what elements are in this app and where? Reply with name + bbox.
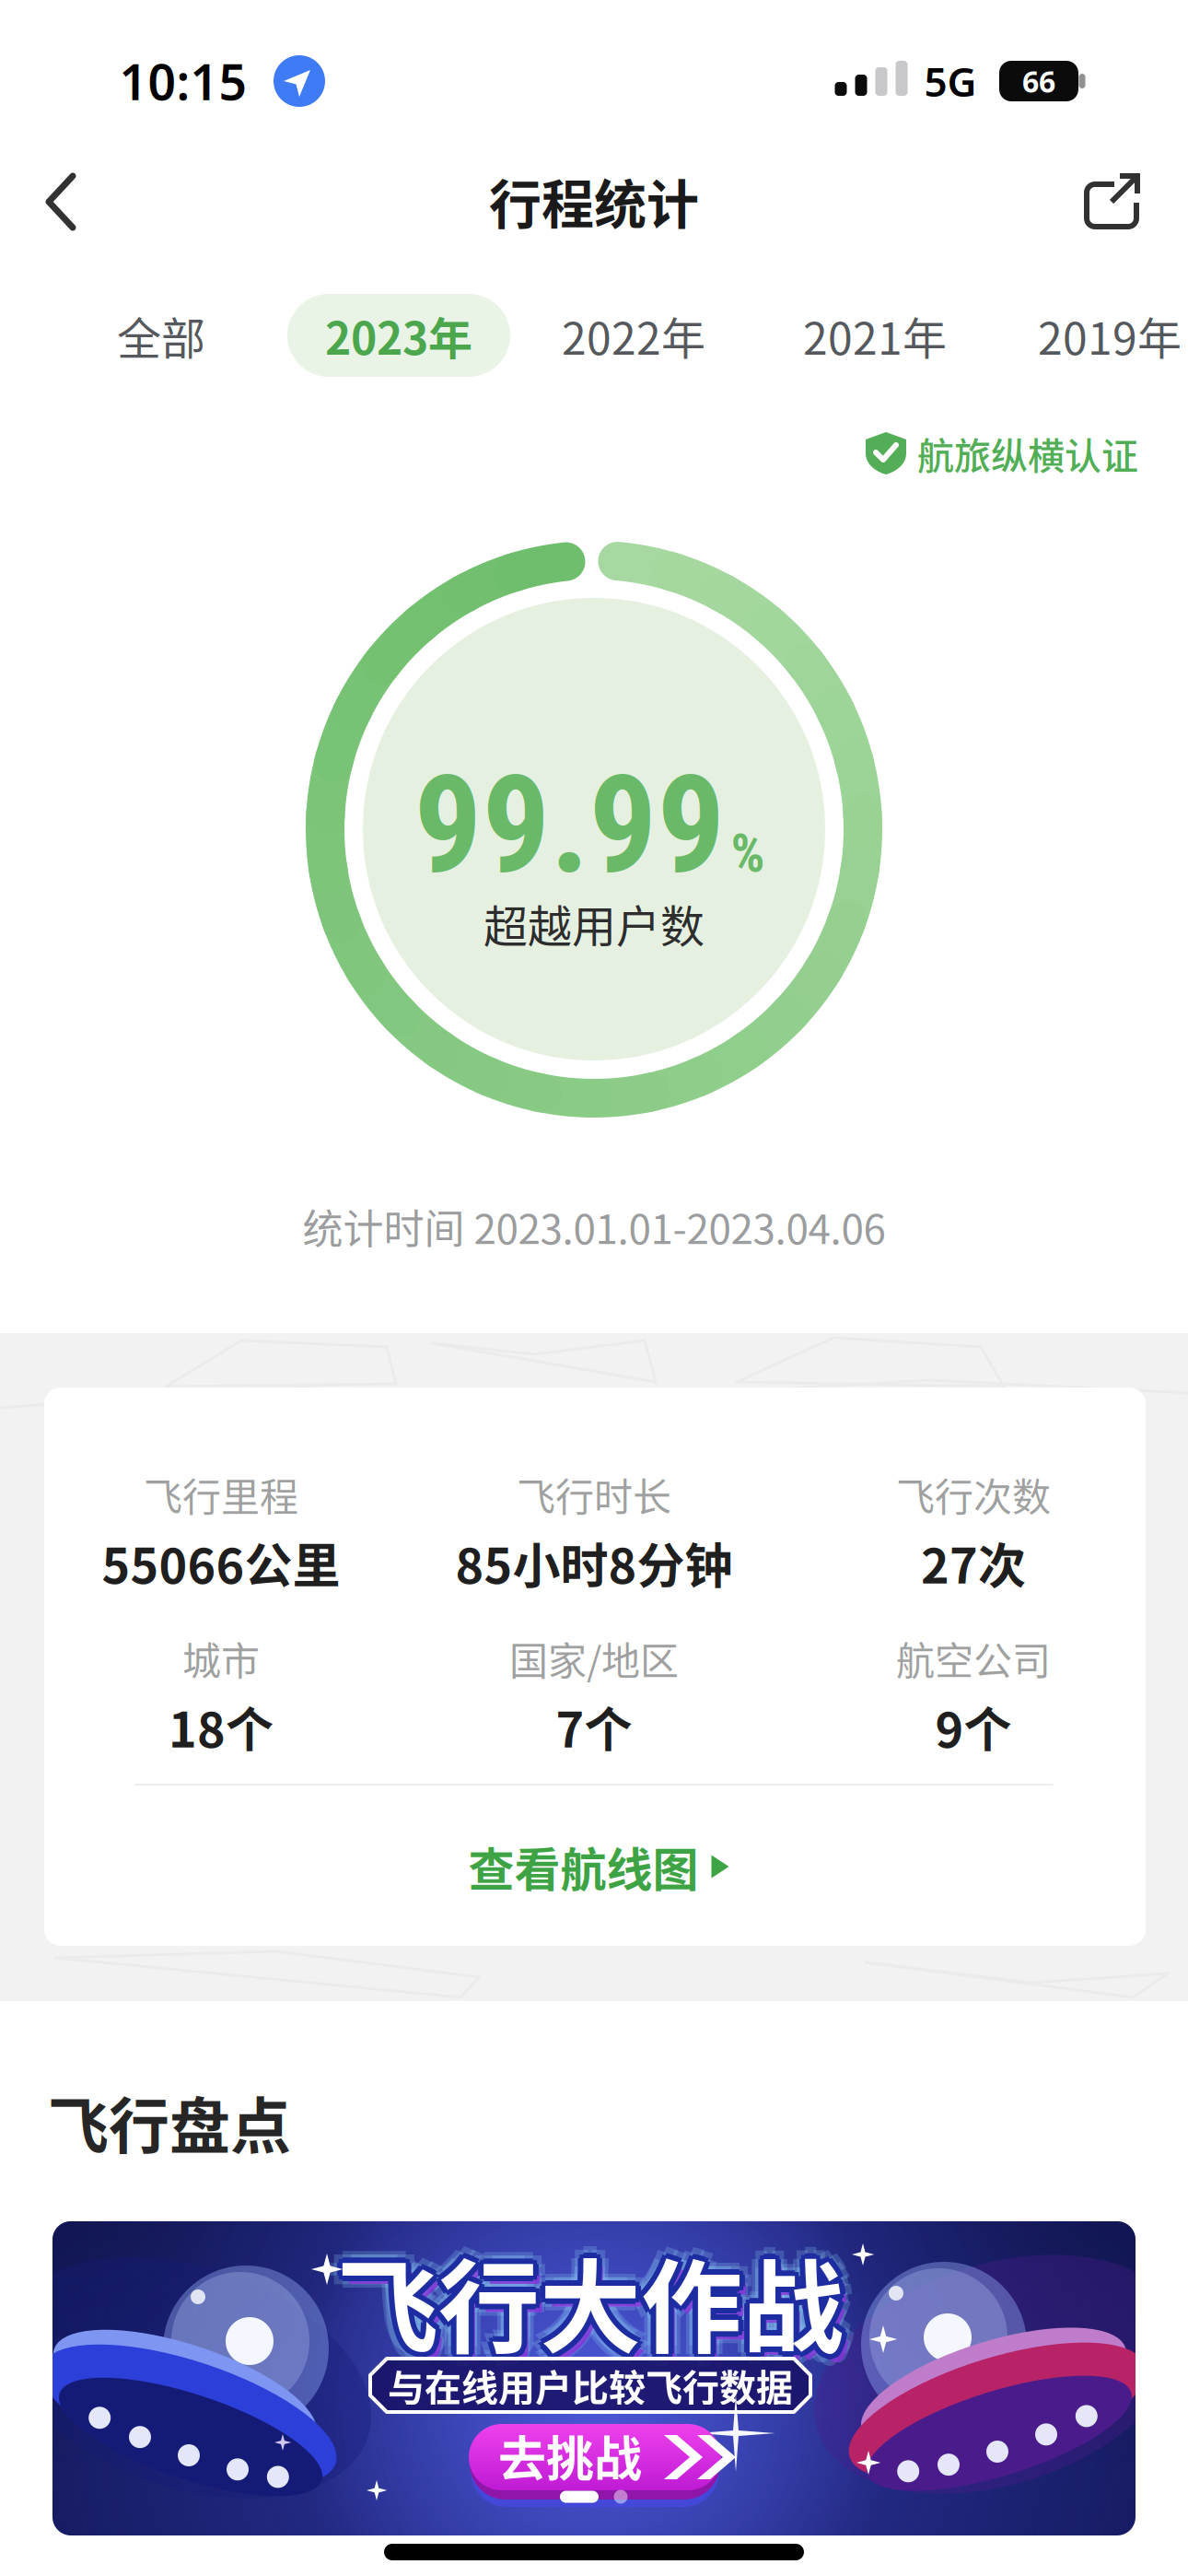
button[interactable]: 返回 — [23, 152, 100, 252]
staticText: 55066公里 — [102, 1528, 340, 1597]
staticText: 飞行大作战 — [325, 2227, 832, 2374]
button[interactable]: 2023年 — [287, 294, 510, 377]
staticText: 飞行大作战 — [346, 2219, 852, 2365]
staticText: 飞行大作战 — [346, 2236, 852, 2382]
staticText: 飞行大作战 — [333, 2231, 840, 2378]
button[interactable]: 2021年 — [803, 289, 947, 382]
staticText: 行程统计 — [489, 163, 699, 239]
staticText: 2021年 — [803, 303, 947, 367]
staticText: 飞行盘点 — [48, 2078, 291, 2166]
staticText: 10:15 — [119, 48, 247, 114]
staticText: 飞行大作战 — [344, 2235, 850, 2382]
staticText: 飞行大作战 — [332, 2227, 838, 2374]
staticText: 2022年 — [562, 303, 705, 367]
staticText: 飞行大作战 — [337, 2227, 844, 2374]
staticText: 99.99 — [414, 747, 725, 904]
staticText: 与在线用户比较飞行数据 — [388, 2359, 793, 2412]
staticText: 飞行大作战 — [329, 2236, 835, 2382]
staticText: 飞行大作战 — [337, 2215, 844, 2362]
staticText: 城市 — [182, 1630, 260, 1686]
button[interactable]: 查看航线图 — [468, 1824, 729, 1909]
staticText: 飞行大作战 — [333, 2223, 840, 2370]
staticText: 85小时8分钟 — [455, 1528, 733, 1597]
staticText: 航旅纵横认证 — [917, 427, 1138, 480]
staticText: 9个 — [935, 1692, 1012, 1761]
staticText: 2019年 — [1038, 303, 1182, 367]
staticText: 飞行大作战 — [341, 2231, 847, 2378]
staticText: 查看航线图 — [468, 1833, 699, 1900]
staticText: 统计时间 2023.01.01-2023.04.06 — [303, 1197, 885, 1256]
staticText: 飞行大作战 — [329, 2219, 835, 2365]
staticText: 66 — [1022, 62, 1055, 101]
staticText: 飞行大作战 — [349, 2227, 856, 2374]
staticText: 去挑战 — [498, 2421, 642, 2490]
staticText: 飞行大作战 — [337, 2239, 844, 2386]
staticText: 18个 — [169, 1692, 274, 1761]
staticText: 5G — [924, 54, 977, 108]
button[interactable]: 2022年 — [562, 289, 705, 382]
button[interactable]: 全部 — [117, 289, 205, 382]
staticText: 飞行大作战 — [337, 2233, 844, 2379]
staticText: 2023年 — [325, 303, 472, 367]
button[interactable]: 飞行大作战 — [52, 2221, 1136, 2535]
staticText: 飞行里程 — [144, 1466, 298, 1522]
staticText: 飞行大作战 — [337, 2222, 844, 2368]
staticText: 全部 — [117, 303, 205, 367]
button[interactable]: 分享 — [1065, 153, 1160, 249]
staticText: 飞行次数 — [896, 1466, 1051, 1522]
staticText: 超越用户数 — [483, 891, 705, 955]
staticText: 27次 — [921, 1528, 1026, 1597]
staticText: 飞行大作战 — [341, 2223, 847, 2370]
staticText: 航空公司 — [896, 1630, 1051, 1686]
staticText: 7个 — [556, 1692, 632, 1761]
button[interactable]: 2019年 — [1038, 289, 1182, 382]
staticText: 飞行大作战 — [343, 2227, 849, 2374]
staticText: % — [731, 822, 765, 885]
staticText: 飞行时长 — [517, 1466, 671, 1522]
staticText: 国家/地区 — [509, 1630, 679, 1686]
